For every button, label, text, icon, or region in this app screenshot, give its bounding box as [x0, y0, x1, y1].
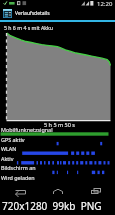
staticText: WLAN	[1, 145, 17, 152]
button[interactable]: Bildschirm an	[0, 165, 115, 175]
other: App icon	[3, 9, 12, 18]
staticText: 5 h 5 m 50 s	[44, 121, 75, 128]
staticText: 720x1280 99kb PNG	[2, 199, 102, 213]
button[interactable]: Back	[0, 184, 39, 198]
button[interactable]: WLAN	[0, 146, 115, 156]
staticText: 5 h 6 m 4 s mit Akku	[4, 24, 54, 31]
staticText: Mobilfunknetzsignal	[1, 126, 53, 133]
button[interactable]: Aktiv	[0, 156, 115, 166]
button[interactable]: Recents	[77, 184, 115, 198]
staticText: Verlaufsdetails	[15, 10, 50, 17]
button[interactable]: GPS aktiv	[0, 137, 115, 147]
staticText: Bildschirm an	[1, 164, 36, 171]
staticText: GPS aktiv	[1, 136, 25, 143]
button[interactable]: Mobilfunknetzsignal	[0, 127, 115, 137]
button[interactable]: App icon	[0, 7, 115, 20]
button[interactable]: Home	[39, 184, 77, 198]
staticText: 12:20	[97, 0, 113, 7]
button[interactable]: Wird geladen	[0, 175, 115, 185]
staticText: Aktiv	[1, 155, 14, 162]
staticText: Wird geladen	[1, 174, 35, 181]
